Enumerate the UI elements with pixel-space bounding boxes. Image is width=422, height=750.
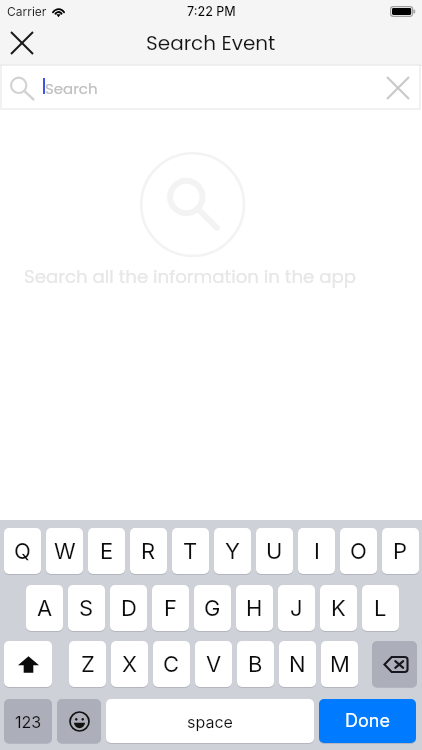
button[interactable]: Close [1,21,43,65]
button[interactable]: Y [214,528,251,574]
staticText: L [374,595,387,622]
staticText: J [290,595,303,622]
button[interactable]: space [106,699,314,743]
button[interactable]: X [111,641,148,687]
staticText: G [204,595,221,622]
button[interactable]: M [321,641,358,687]
button[interactable]: O [340,528,377,574]
button[interactable]: B [237,641,274,687]
button[interactable]: R [130,528,167,574]
staticText: H [246,595,263,622]
staticText: Carrier [7,4,47,19]
staticText: Search Event [146,29,276,57]
staticText: N [289,651,306,678]
button[interactable]: Z [69,641,106,687]
button[interactable]: Q [4,528,41,574]
staticText: F [164,595,177,622]
button[interactable]: W [46,528,83,574]
staticText: O [350,538,367,565]
button[interactable]: U [256,528,293,574]
button[interactable]: Backspace [372,641,417,687]
button[interactable]: L [362,585,399,631]
staticText: Search all the information in the app [24,264,357,289]
button[interactable]: Done [319,699,416,743]
staticText: Y [225,538,240,565]
button[interactable]: N [279,641,316,687]
button[interactable]: 123 [4,699,52,743]
staticText: D [121,595,137,622]
button[interactable]: H [236,585,273,631]
staticText: P [393,538,408,565]
button[interactable]: T [172,528,209,574]
staticText: V [206,651,222,678]
staticText: Search [45,78,98,99]
button[interactable]: I [298,528,335,574]
button[interactable]: C [153,641,190,687]
button[interactable]: G [194,585,231,631]
button[interactable]: Search [1,65,420,109]
staticText: Z [81,651,95,678]
staticText: 7:22 PM [187,4,236,19]
button[interactable]: K [320,585,357,631]
staticText: W [54,538,76,565]
staticText: A [37,595,53,622]
button[interactable]: V [195,641,232,687]
staticText: R [141,538,156,565]
staticText: Q [14,538,31,565]
staticText: Done [345,710,390,732]
staticText: B [248,651,263,678]
staticText: M [330,651,350,678]
staticText: X [122,651,138,678]
staticText: S [79,595,94,622]
button[interactable]: F [152,585,189,631]
button[interactable]: D [110,585,147,631]
button[interactable]: S [68,585,105,631]
button[interactable]: Shift [4,641,52,687]
button[interactable]: J [278,585,315,631]
staticText: space [187,712,233,731]
staticText: C [163,651,180,678]
staticText: 123 [15,712,42,731]
staticText: T [183,538,198,565]
button[interactable]: Clear search [382,72,414,104]
staticText: I [314,538,320,565]
button[interactable]: Emoji [57,699,101,743]
staticText: E [100,538,114,565]
staticText: K [331,595,346,622]
button[interactable]: P [382,528,419,574]
button[interactable]: A [26,585,63,631]
button[interactable]: E [88,528,125,574]
staticText: U [266,538,283,565]
